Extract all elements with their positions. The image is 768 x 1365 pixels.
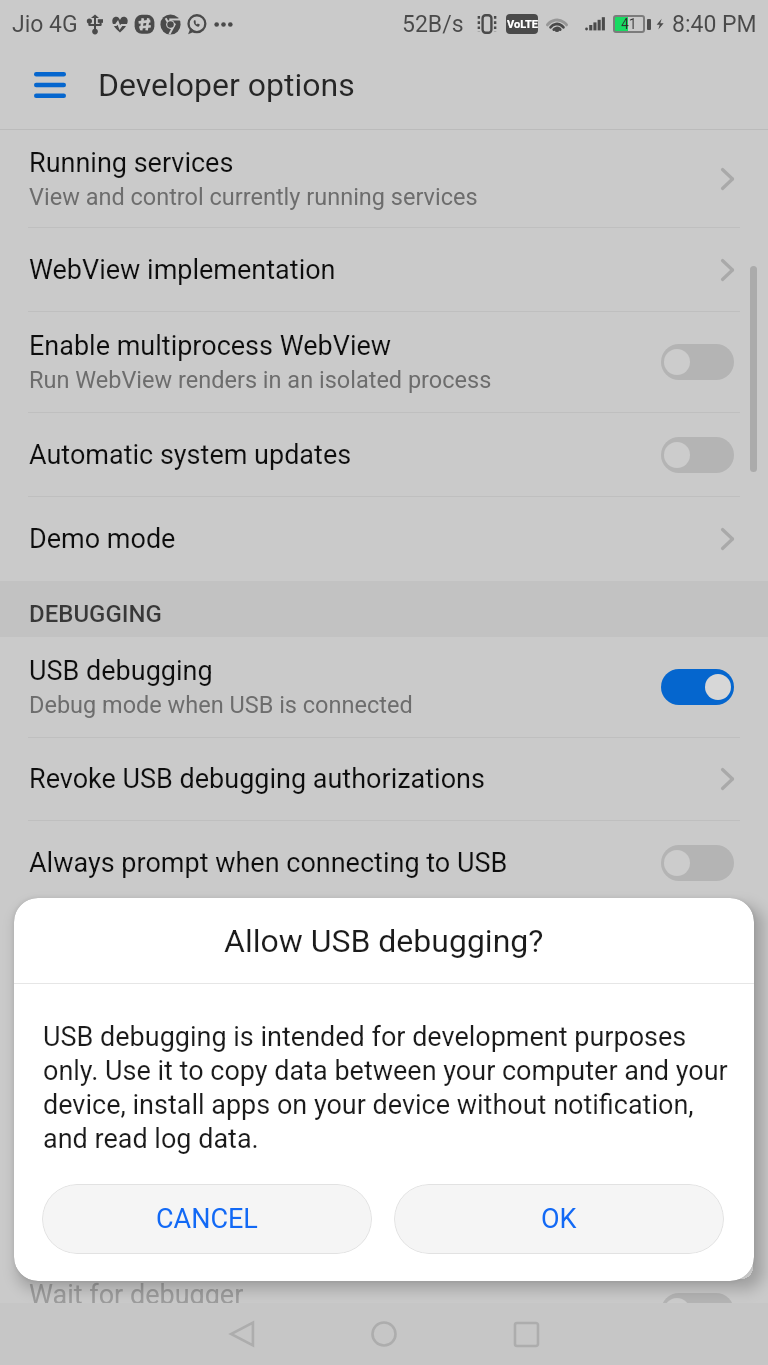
- staticText: Enable multiprocess WebView: [29, 330, 392, 362]
- staticText: DEBUGGING: [29, 600, 162, 628]
- button[interactable]: Toggle on: [661, 669, 734, 705]
- staticText: Demo mode: [29, 523, 176, 555]
- button[interactable]: Enable view attribute inspection: [0, 1104, 768, 1188]
- button[interactable]: Open: [702, 519, 734, 559]
- staticText: Jio 4G: [12, 11, 78, 38]
- staticText: No debug application set: [29, 1229, 290, 1257]
- button[interactable]: Recent apps: [500, 1308, 552, 1360]
- button[interactable]: Demo mode: [0, 497, 768, 581]
- button[interactable]: CANCEL: [42, 1184, 372, 1254]
- button[interactable]: Automatic system updates: [0, 413, 768, 496]
- staticText: Automatic system updates: [29, 439, 352, 471]
- button[interactable]: Running services: [0, 130, 768, 227]
- button[interactable]: Toggle off: [661, 845, 734, 881]
- button[interactable]: Select debug app: [0, 1189, 768, 1261]
- button[interactable]: Back: [216, 1308, 268, 1360]
- staticText: Show a button in the power menu: [29, 959, 378, 987]
- button[interactable]: Enable multiprocess WebView: [0, 312, 768, 412]
- staticText: Bug report shortcut: [29, 923, 263, 955]
- button[interactable]: Open: [702, 759, 734, 799]
- button[interactable]: Select mock location app: [0, 1005, 768, 1103]
- staticText: Select debug app: [29, 1193, 237, 1225]
- button[interactable]: Wait for debugger: [0, 1262, 768, 1360]
- button[interactable]: USB debugging: [0, 637, 768, 737]
- staticText: Debug mode when USB is connected: [29, 691, 413, 719]
- staticText: View and control currently running servi…: [29, 183, 478, 211]
- staticText: Debugged application waits for debugger …: [29, 1315, 557, 1343]
- staticText: Allow USB debugging?: [224, 922, 544, 960]
- staticText: Running services: [29, 147, 234, 179]
- button[interactable]: Open: [702, 1205, 734, 1245]
- button[interactable]: Open: [702, 159, 734, 199]
- staticText: 8:40 PM: [672, 11, 757, 38]
- staticText: 41: [621, 16, 637, 32]
- staticText: OK: [541, 1203, 577, 1235]
- staticText: USB debugging: [29, 655, 213, 687]
- staticText: Always prompt when connecting to USB: [29, 847, 508, 879]
- staticText: USB debugging is intended for developmen…: [43, 1021, 740, 1155]
- staticText: No mock location app set: [29, 1058, 297, 1086]
- button[interactable]: Open navigation menu: [34, 60, 66, 110]
- button[interactable]: Revoke USB debugging authorizations: [0, 738, 768, 820]
- button[interactable]: WebView implementation: [0, 228, 768, 311]
- staticText: Run WebView renders in an isolated proce…: [29, 366, 492, 394]
- staticText: VoLTE: [507, 18, 538, 31]
- button[interactable]: Home: [358, 1308, 410, 1360]
- staticText: Select mock location app: [29, 1022, 332, 1054]
- button[interactable]: Open: [702, 1034, 734, 1074]
- button[interactable]: Always prompt when connecting to USB: [0, 821, 768, 905]
- button[interactable]: Bug report shortcut: [0, 906, 768, 1004]
- button[interactable]: OK: [394, 1184, 724, 1254]
- button[interactable]: Toggle off: [661, 437, 734, 473]
- staticText: Enable view attribute inspection: [29, 1130, 411, 1162]
- staticText: CANCEL: [156, 1203, 258, 1235]
- staticText: WebView implementation: [29, 254, 336, 286]
- staticText: 52B/s: [402, 11, 464, 38]
- button[interactable]: Open: [702, 250, 734, 290]
- staticText: Revoke USB debugging authorizations: [29, 763, 485, 795]
- button[interactable]: Toggle off: [661, 344, 734, 380]
- staticText: Developer options: [98, 66, 355, 104]
- button[interactable]: Toggle off: [661, 1293, 734, 1329]
- staticText: Wait for debugger: [29, 1279, 244, 1311]
